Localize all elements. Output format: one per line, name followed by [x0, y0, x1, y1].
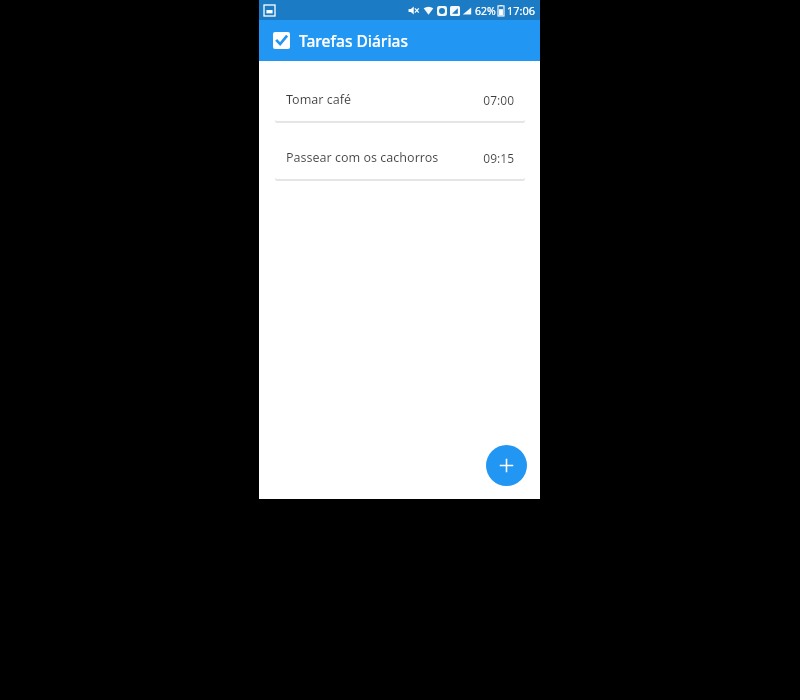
button[interactable]: Adicionar tarefa — [486, 445, 527, 486]
button[interactable]: Passear com os cachorros — [275, 136, 525, 179]
staticText: 07:00 — [483, 92, 514, 108]
staticText: Passear com os cachorros — [286, 149, 483, 166]
staticText: Tarefas Diárias — [299, 30, 408, 51]
staticText: 17:06 — [507, 3, 536, 18]
staticText: 09:15 — [483, 150, 514, 166]
button[interactable]: Tomar café — [275, 78, 525, 121]
staticText: 62% — [475, 4, 496, 18]
staticText: Tomar café — [286, 91, 483, 108]
